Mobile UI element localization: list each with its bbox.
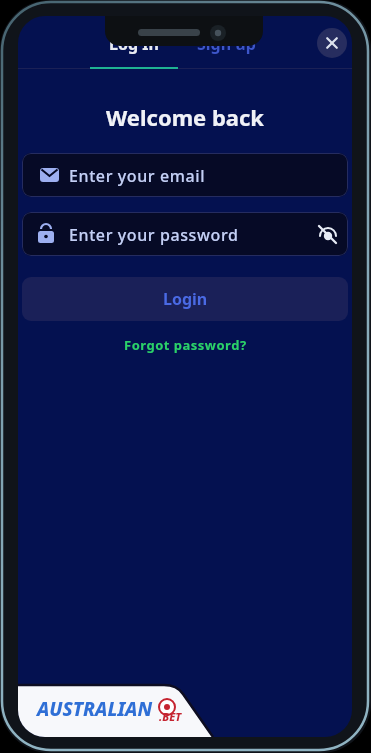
- staticText: AUSTRALIAN: [37, 696, 153, 722]
- button[interactable]: [317, 28, 347, 58]
- button[interactable]: Enter your password: [22, 212, 348, 256]
- button[interactable]: [312, 218, 344, 250]
- staticText: Welcome back: [106, 102, 265, 132]
- button[interactable]: Log In: [90, 29, 178, 59]
- staticText: .BET: [159, 709, 182, 724]
- staticText: Log In: [109, 33, 159, 55]
- button[interactable]: Sign up: [182, 29, 270, 59]
- staticText: Forgot password?: [124, 336, 247, 354]
- button[interactable]: Login: [22, 277, 348, 321]
- staticText: Login: [163, 288, 208, 310]
- button[interactable]: Forgot password?: [18, 336, 352, 354]
- staticText: Enter your password: [69, 224, 239, 246]
- staticText: Sign up: [197, 33, 256, 55]
- button[interactable]: Enter your email: [22, 153, 348, 197]
- staticText: Enter your email: [69, 165, 206, 187]
